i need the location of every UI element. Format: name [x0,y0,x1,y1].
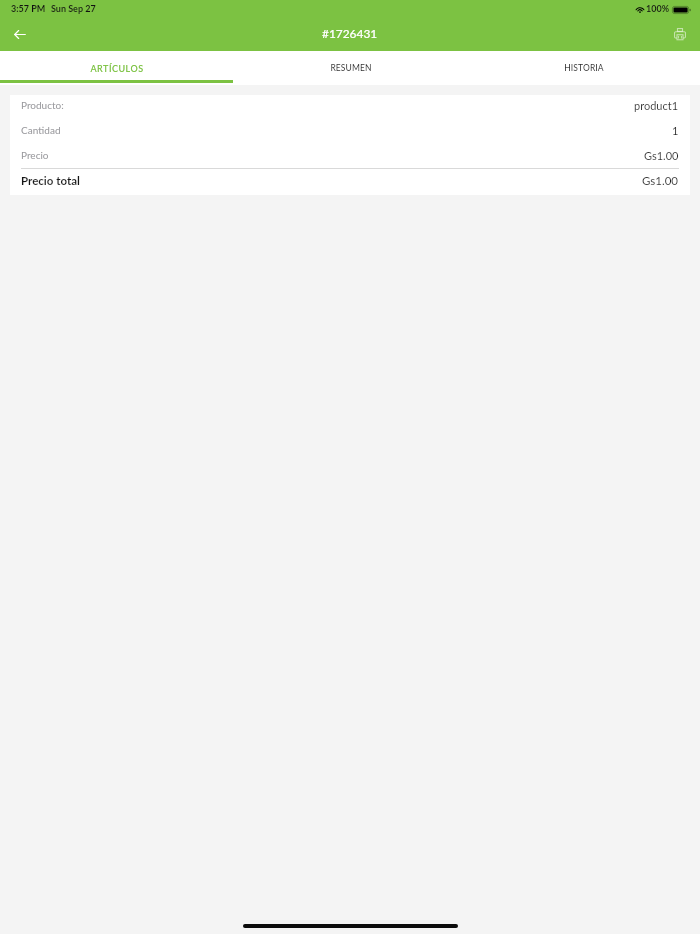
staticText: HISTORIA [564,63,604,73]
staticText: Gs1.00 [642,174,679,188]
button[interactable]: ARTÍCULOS [0,51,234,85]
button[interactable]: Producto: [10,95,690,120]
staticText: 1 [672,124,679,137]
staticText: Precio total [21,174,80,188]
staticText: Precio [21,149,49,161]
staticText: Cantidad [21,124,61,136]
staticText: Gs1.00 [644,149,679,162]
staticText: Sun Sep 27 [51,3,96,14]
button[interactable]: Cantidad [10,120,690,145]
button[interactable]: Precio [10,145,690,168]
button[interactable]: Precio total [10,169,690,196]
staticText: product1 [634,99,679,112]
button[interactable]: Back [7,21,33,47]
staticText: 100% [646,3,670,14]
button[interactable]: HISTORIA [467,51,700,85]
staticText: #1726431 [322,26,378,40]
staticText: RESUMEN [330,63,372,73]
staticText: 3:57 PM [11,3,46,14]
button[interactable]: Print [667,21,693,47]
staticText: ARTÍCULOS [90,63,144,74]
staticText: Producto: [21,99,64,111]
button[interactable]: RESUMEN [234,51,467,85]
